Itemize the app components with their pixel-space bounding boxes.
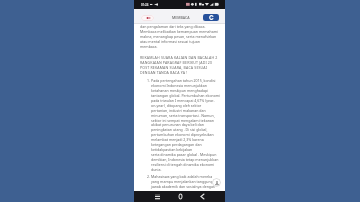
staticText: ketahanan meskipun menghadapi [151, 88, 209, 93]
staticText: ketegangan perdagangan dan [151, 142, 202, 147]
button[interactable]: Back [197, 191, 208, 202]
button[interactable]: Home [175, 191, 186, 202]
staticText: membaca. [140, 44, 158, 49]
staticText: serta dinamika pasar global . Meskipun [151, 152, 217, 157]
staticText: pertanian, industri makanan dan [151, 108, 206, 113]
staticText: atau mental informasi sesuai tujuan [140, 39, 200, 44]
staticText: DENGAN TANDA BACA YA ! [140, 70, 188, 75]
staticText: POST REKAMAN SUARA, BACA SESUAI [140, 65, 208, 70]
staticText: akibat penurunan daya beli dan [151, 122, 204, 127]
staticText: on-year), ditopang oleh sektor [151, 103, 202, 108]
staticText: minuman, serta transportasi . Namun, [151, 113, 215, 118]
staticText: yang mampu menjalankan tanggung [151, 179, 213, 184]
staticText: Membaca melibatkan kemampuan memahami [140, 29, 218, 34]
staticText: tantangan global. Pertumbuhan ekonomi [151, 93, 221, 98]
staticText: REKAMLAH SUARA KALIAN DAN BACALAH 2 [140, 55, 218, 60]
staticText: ketidakpastian kebijakan [151, 147, 193, 152]
staticText: Mahasiswa yang baik adalah mereka [151, 174, 213, 179]
button[interactable]: Recent apps [152, 191, 163, 202]
staticText: jawab akademik dan sosialnya dengan [151, 184, 216, 189]
staticText: pertumbuhan ekonomi diproyeksikan [151, 132, 214, 137]
staticText: MEMBACA [172, 15, 190, 20]
staticText: demikian, Indonesia tetap menunjukkan [151, 157, 219, 162]
staticText: ekonomi Indonesia menunjukkan [151, 83, 207, 88]
button[interactable]: Back [141, 15, 154, 21]
staticText: peningkatan utang . Di sisi global, [151, 127, 208, 132]
staticText: RANGKAIAN PARAGRAF BERIKUT JADI 2X [140, 60, 213, 65]
staticText: melambat menjadi 2,3% karena [151, 137, 204, 142]
staticText: dan pengalaman dari teks yang dibaca. [140, 24, 206, 29]
staticText: makna, menangkap pesan, serta menafsirka… [140, 34, 217, 39]
staticText: 01:24 [141, 3, 149, 7]
staticText: dunia. [151, 167, 162, 172]
button[interactable]: Accessibility [212, 178, 221, 187]
staticText: sektor ini sempat mengalami tekanan [151, 118, 215, 123]
staticText: 1. [147, 78, 150, 83]
staticText: pada triwulan I mencapai 4,67% (year- [151, 98, 215, 103]
staticText: 2. [147, 174, 150, 179]
button[interactable]: Refresh [203, 14, 219, 21]
staticText: resiliensi di tengah dinamika ekonomi [151, 162, 215, 167]
staticText: Pada pertengahan tahun 2015, kondisi [151, 78, 216, 83]
